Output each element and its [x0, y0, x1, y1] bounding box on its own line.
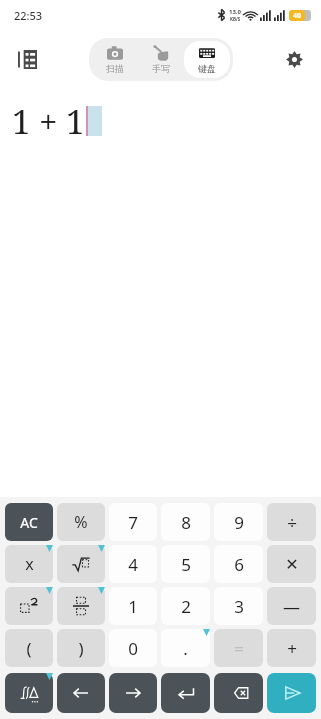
- button[interactable]: ✕: [267, 545, 316, 583]
- button[interactable]: —: [267, 587, 316, 625]
- staticText: 40: [293, 11, 302, 21]
- staticText: 9: [234, 511, 244, 534]
- button[interactable]: 5: [161, 545, 210, 583]
- button[interactable]: History: [8, 40, 46, 78]
- button[interactable]: [5, 587, 53, 625]
- staticText: 1: [128, 595, 138, 618]
- button[interactable]: Left: [57, 673, 105, 713]
- button[interactable]: =: [214, 629, 263, 667]
- staticText: 6: [234, 553, 244, 576]
- staticText: AC: [20, 513, 38, 532]
- staticText: 2: [181, 595, 191, 618]
- button[interactable]: AC: [5, 503, 53, 541]
- button[interactable]: Settings: [275, 40, 313, 78]
- button[interactable]: Right: [109, 673, 157, 713]
- button[interactable]: 6: [214, 545, 263, 583]
- staticText: ): [78, 637, 84, 660]
- staticText: ✕: [285, 555, 299, 574]
- staticText: 扫描: [106, 63, 124, 74]
- button[interactable]: 3: [214, 587, 263, 625]
- staticText: %: [74, 511, 88, 533]
- button[interactable]: 9: [214, 503, 263, 541]
- button[interactable]: ): [57, 629, 105, 667]
- staticText: 5: [181, 553, 191, 576]
- staticText: KB/S: [230, 16, 241, 22]
- button[interactable]: 扫描: [92, 41, 138, 78]
- button[interactable]: (: [5, 629, 53, 667]
- button[interactable]: 4: [109, 545, 157, 583]
- staticText: (: [26, 637, 32, 660]
- staticText: =: [234, 637, 244, 660]
- button[interactable]: Enter: [161, 673, 210, 713]
- button[interactable]: [57, 587, 105, 625]
- button[interactable]: +: [267, 629, 316, 667]
- button[interactable]: %: [57, 503, 105, 541]
- staticText: 键盘: [198, 63, 216, 74]
- button[interactable]: 手写: [138, 41, 184, 78]
- staticText: 22:53: [14, 8, 43, 23]
- staticText: +: [287, 637, 297, 660]
- button[interactable]: Backspace: [214, 673, 263, 713]
- button[interactable]: ÷: [267, 503, 316, 541]
- button[interactable]: 1: [109, 587, 157, 625]
- button[interactable]: [57, 545, 105, 583]
- staticText: 8: [181, 511, 191, 534]
- staticText: 手写: [152, 63, 170, 74]
- button[interactable]: 7: [109, 503, 157, 541]
- button[interactable]: .: [161, 629, 210, 667]
- button[interactable]: x: [5, 545, 53, 583]
- staticText: 13.0: [229, 8, 241, 16]
- staticText: ÷: [287, 511, 297, 534]
- staticText: 4: [128, 553, 138, 576]
- button[interactable]: Functions: [5, 673, 53, 713]
- staticText: x: [25, 553, 34, 575]
- button[interactable]: 2: [161, 587, 210, 625]
- staticText: 0: [128, 637, 138, 660]
- button[interactable]: 0: [109, 629, 157, 667]
- button[interactable]: 键盘: [184, 41, 230, 78]
- staticText: 1 + 1: [12, 99, 85, 144]
- staticText: 3: [234, 595, 244, 618]
- staticText: —: [283, 595, 300, 618]
- button[interactable]: 8: [161, 503, 210, 541]
- staticText: 7: [128, 511, 138, 534]
- button[interactable]: Calculate: [267, 673, 316, 713]
- staticText: .: [183, 637, 188, 660]
